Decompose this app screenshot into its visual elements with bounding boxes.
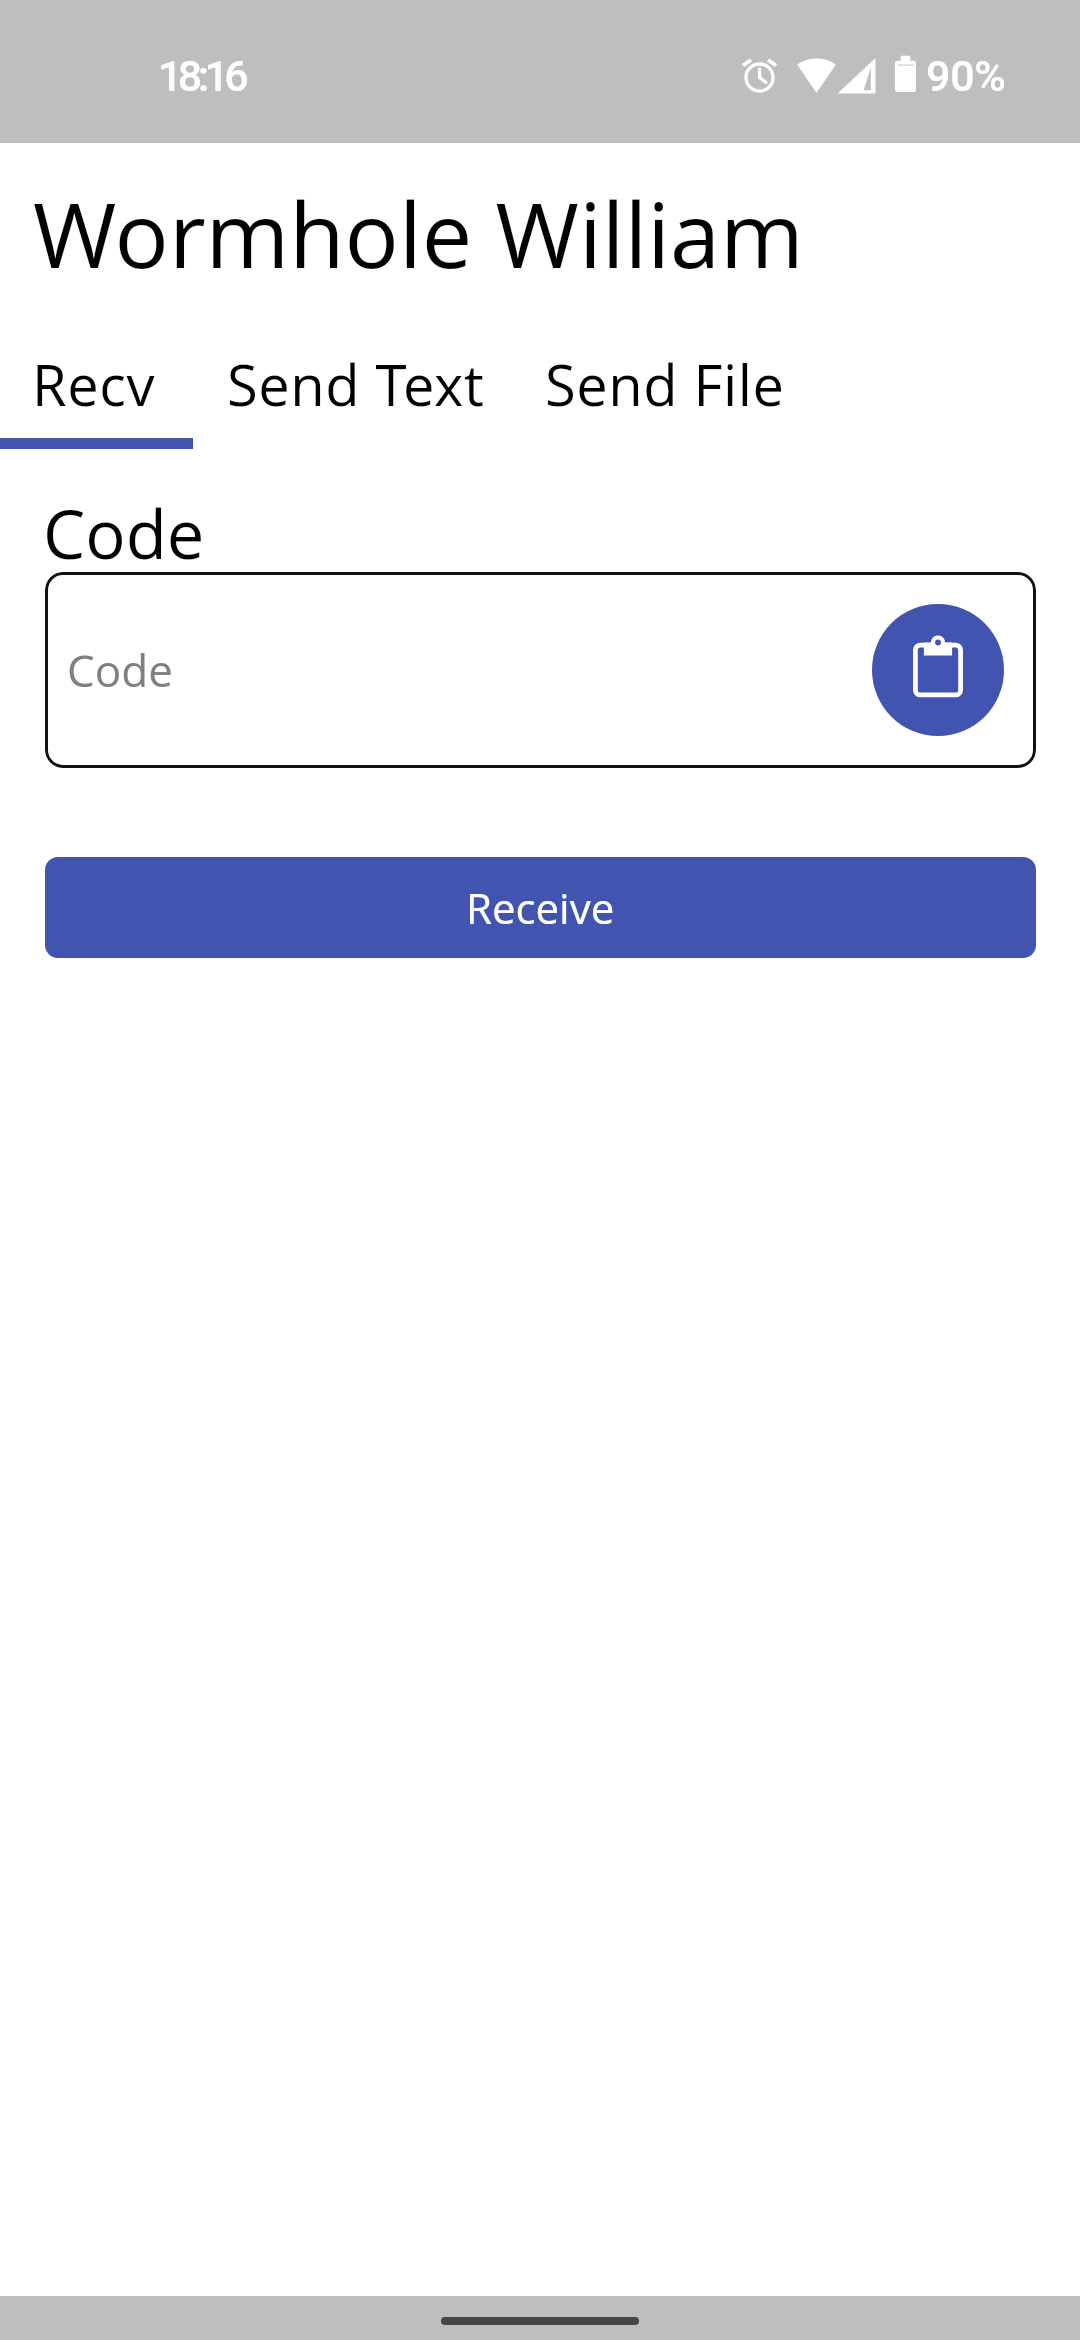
staticText: Code: [67, 640, 173, 700]
staticText: Send Text: [227, 346, 485, 422]
button[interactable]: Code: [45, 572, 1036, 768]
staticText: 18:16: [158, 51, 245, 101]
staticText: 90%: [926, 51, 1006, 101]
staticText: Recv: [32, 346, 156, 422]
button[interactable]: Send Text: [191, 330, 510, 450]
staticText: Receive: [466, 879, 615, 936]
button[interactable]: Paste code from clipboard: [872, 604, 1004, 736]
button[interactable]: Recv: [0, 330, 193, 450]
staticText: Send File: [545, 346, 785, 422]
staticText: Code: [43, 487, 205, 578]
button[interactable]: Send File: [509, 330, 813, 450]
staticText: Wormhole William: [33, 172, 804, 295]
button[interactable]: Receive: [45, 857, 1036, 958]
